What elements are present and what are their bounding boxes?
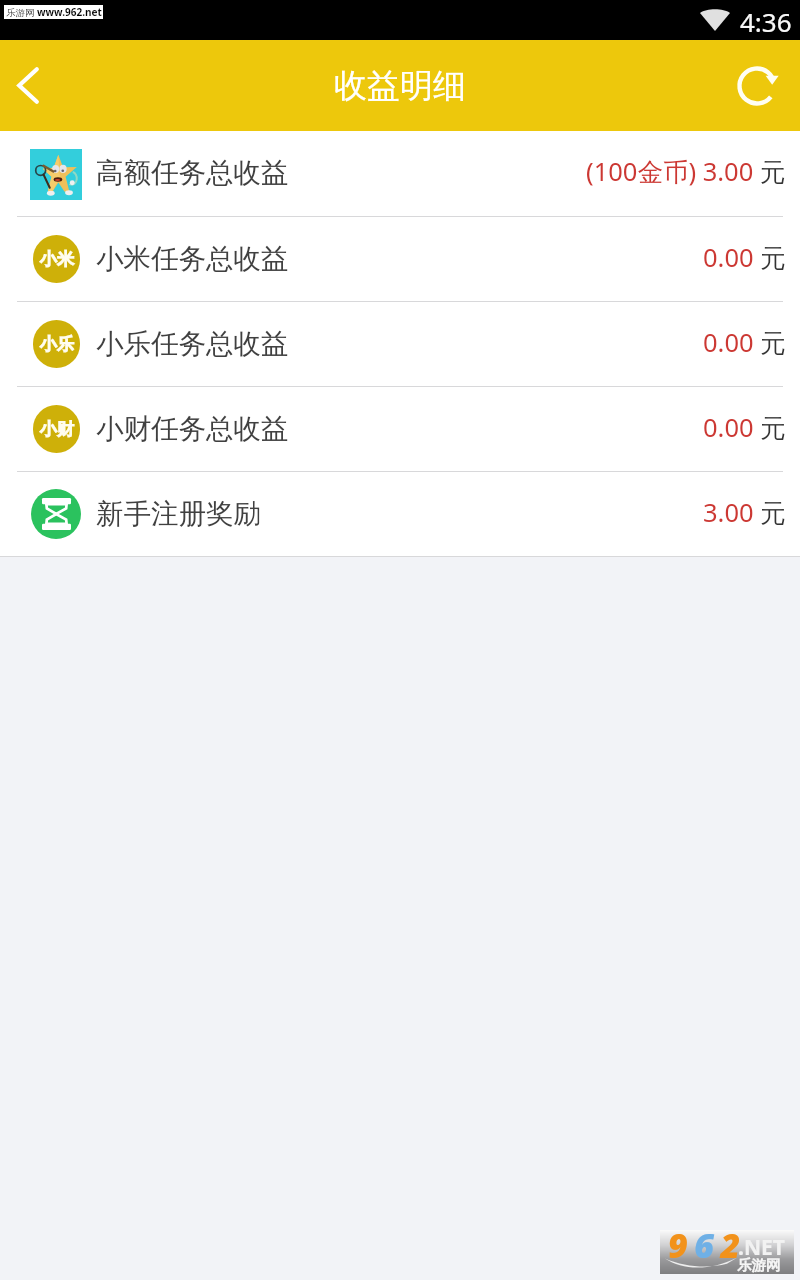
staticText: 新手注册奖励	[96, 497, 261, 532]
button[interactable]: Back	[0, 40, 54, 131]
staticText: 高额任务总收益	[96, 156, 289, 191]
staticText: 小乐	[40, 334, 74, 355]
staticText: 3.00 元	[703, 495, 786, 530]
staticText: 乐游网 www.962.net	[6, 5, 105, 19]
button[interactable]: 小乐	[0, 301, 800, 386]
staticText: 小财任务总收益	[96, 412, 289, 447]
staticText: 小乐任务总收益	[96, 327, 289, 362]
staticText: (100金币) 3.00 元	[586, 154, 786, 189]
staticText: 小财	[40, 419, 74, 440]
button[interactable]: 新手注册奖励	[0, 471, 800, 556]
staticText: 962	[668, 1222, 747, 1266]
staticText: 0.00 元	[703, 240, 786, 275]
staticText: 小米任务总收益	[96, 242, 289, 277]
button[interactable]: 小米	[0, 216, 800, 301]
button[interactable]: 高额任务总收益	[0, 131, 800, 216]
staticText: 小米	[40, 249, 74, 270]
button[interactable]: Refresh	[712, 40, 800, 131]
staticText: .NET	[738, 1233, 785, 1262]
staticText: 0.00 元	[703, 410, 786, 445]
staticText: 收益明细	[334, 65, 466, 107]
button[interactable]: 小财	[0, 386, 800, 471]
staticText: 乐游网	[737, 1256, 781, 1274]
staticText: 0.00 元	[703, 325, 786, 360]
staticText: 4:36	[740, 4, 792, 39]
